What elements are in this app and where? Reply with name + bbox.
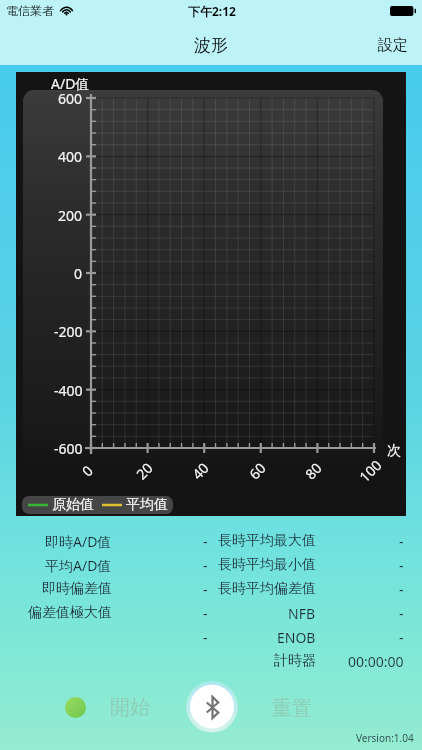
staticText: 0 [78,461,97,480]
staticText: 40 [188,458,213,483]
staticText: 100 [355,455,386,486]
staticText: 長時平均最小值 [218,556,316,574]
staticText: 計時器 [274,652,316,670]
staticText: 60 [245,458,270,483]
staticText: 次 [387,442,401,460]
button[interactable]: Bluetooth [186,681,238,733]
staticText: - [399,628,404,647]
staticText: 200 [58,206,83,225]
staticText: - [399,556,404,575]
staticText: - [399,580,404,599]
staticText: 長時平均最大值 [218,532,316,550]
staticText: 平均A/D值 [45,556,112,575]
staticText: NFB [288,604,316,623]
staticText: - [203,532,208,551]
staticText: 0 [74,264,83,283]
staticText: - [399,604,404,623]
staticText: - [203,604,208,623]
staticText: 平均值 [126,496,168,514]
staticText: 600 [58,89,83,108]
staticText: 波形 [194,35,228,56]
staticText: - [203,556,208,575]
staticText: - [203,580,208,599]
staticText: 下午2:12 [188,3,236,19]
staticText: 原始值 [52,496,94,514]
staticText: 設定 [378,36,408,55]
staticText: 偏差值極大值 [28,604,112,622]
staticText: 開始 [110,695,150,720]
staticText: 80 [301,458,326,483]
staticText: 重置 [272,696,312,721]
staticText: 即時偏差值 [42,580,112,598]
staticText: 即時A/D值 [45,532,112,551]
staticText: 長時平均偏差值 [218,580,316,598]
staticText: A/D值 [51,74,90,93]
staticText: ENOB [277,628,316,647]
button[interactable]: 設定 [364,27,422,64]
staticText: -600 [54,439,83,458]
staticText: 20 [132,458,157,483]
button[interactable]: 開始 [65,695,156,720]
staticText: 00:00:00 [348,652,404,671]
staticText: Version:1.04 [356,731,414,745]
staticText: 電信業者 [6,3,54,18]
staticText: - [203,628,208,647]
staticText: - [399,532,404,551]
button[interactable]: 重置 [272,696,312,721]
staticText: -200 [54,322,83,341]
staticText: -400 [54,381,83,400]
staticText: 400 [58,147,83,166]
